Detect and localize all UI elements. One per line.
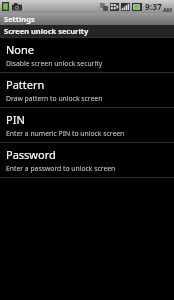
staticText: None [6, 42, 35, 57]
staticText: 9:37 [145, 1, 162, 13]
staticText: Settings [4, 14, 35, 24]
staticText: Draw pattern to unlock screen [6, 94, 103, 103]
staticText: Enter a numeric PIN to unlock screen [6, 129, 125, 138]
staticText: Disable screen unlock security [6, 59, 103, 68]
staticText: PIN [6, 112, 25, 127]
staticText: Screen unlock security [4, 26, 89, 36]
staticText: Enter a password to unlock screen [6, 164, 116, 173]
button[interactable]: Password [0, 143, 174, 177]
staticText: Password [6, 147, 56, 162]
button[interactable]: PIN [0, 108, 174, 142]
staticText: Pattern [6, 77, 45, 92]
button[interactable]: Pattern [0, 73, 174, 107]
button[interactable]: None [0, 38, 174, 72]
staticText: AM [163, 6, 172, 13]
